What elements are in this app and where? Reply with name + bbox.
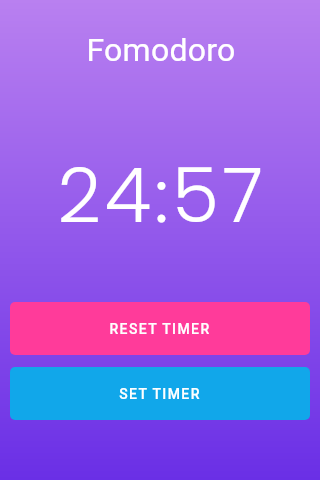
- staticText: Fomodoro: [2, 31, 320, 69]
- staticText: SET TIMER: [119, 386, 201, 402]
- staticText: RESET TIMER: [109, 321, 211, 337]
- staticText: 24:57: [4, 142, 320, 248]
- button[interactable]: RESET TIMER: [10, 302, 310, 355]
- button[interactable]: SET TIMER: [10, 367, 310, 420]
